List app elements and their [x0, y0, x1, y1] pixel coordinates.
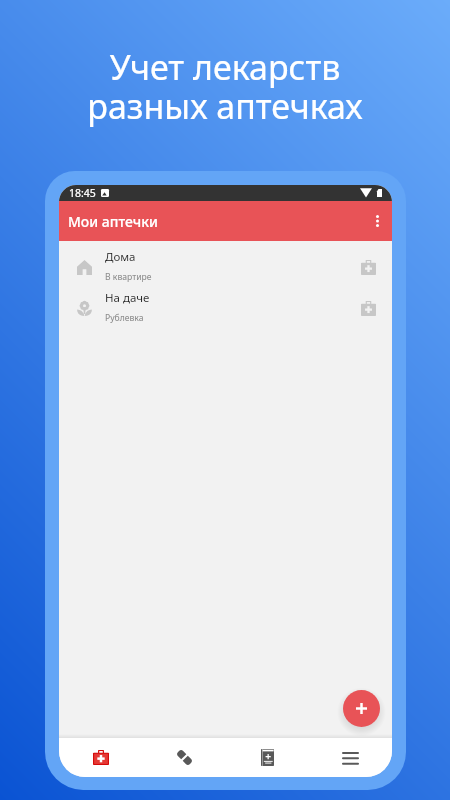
staticText: На даче — [105, 290, 150, 306]
staticText: Дома — [105, 249, 136, 265]
button[interactable]: Ещё — [366, 210, 388, 232]
staticText: Мои аптечки — [68, 212, 158, 231]
button[interactable]: Аптечки — [59, 738, 143, 777]
staticText: Рублевка — [105, 312, 144, 324]
button[interactable]: Справочник — [226, 738, 309, 777]
button[interactable]: Лекарства — [143, 738, 226, 777]
button[interactable]: Дома — [59, 247, 392, 288]
staticText: Учет лекарств разных аптечках — [87, 44, 363, 129]
button[interactable]: Меню — [309, 738, 392, 777]
button[interactable]: На даче — [59, 288, 392, 329]
staticText: В квартире — [105, 271, 152, 283]
button[interactable]: Добавить аптечку — [343, 690, 380, 727]
staticText: 18:45 — [69, 186, 96, 200]
